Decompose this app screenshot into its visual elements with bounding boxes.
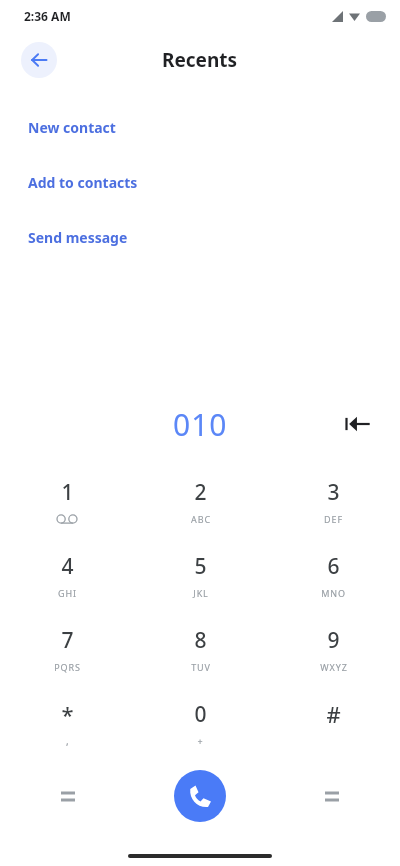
button[interactable]: Back bbox=[21, 42, 57, 78]
staticText: # bbox=[326, 699, 341, 729]
staticText: TUV bbox=[191, 661, 211, 673]
staticText: DEF bbox=[324, 513, 343, 525]
staticText: 7 bbox=[61, 626, 74, 655]
staticText: * bbox=[61, 699, 74, 729]
button[interactable]: Key * bbox=[0, 686, 134, 760]
button[interactable]: Key 0 bbox=[134, 686, 267, 760]
button[interactable]: New contact bbox=[0, 100, 400, 155]
staticText: WXYZ bbox=[320, 661, 348, 673]
button[interactable]: Key 3 bbox=[267, 464, 400, 538]
button[interactable]: Send message bbox=[0, 210, 400, 265]
staticText: PQRS bbox=[54, 661, 81, 673]
staticText: MNO bbox=[321, 587, 346, 599]
button[interactable]: Key 9 bbox=[267, 612, 400, 686]
button[interactable]: Key 6 bbox=[267, 538, 400, 612]
button[interactable]: Add to contacts bbox=[0, 155, 400, 210]
button[interactable]: Backspace bbox=[338, 404, 378, 444]
staticText: 8 bbox=[194, 626, 207, 655]
staticText: 6 bbox=[327, 552, 340, 581]
staticText: 3 bbox=[327, 478, 340, 507]
staticText: 2 bbox=[194, 478, 207, 507]
staticText: ABC bbox=[191, 513, 211, 525]
staticText: JKL bbox=[193, 587, 209, 599]
staticText: 4 bbox=[61, 552, 74, 581]
button[interactable]: Key 2 bbox=[134, 464, 267, 538]
staticText: New contact bbox=[28, 118, 116, 137]
staticText: Send message bbox=[28, 228, 128, 247]
staticText: Recents bbox=[162, 47, 238, 73]
staticText: + bbox=[197, 735, 204, 747]
staticText: 0 bbox=[194, 700, 207, 729]
button[interactable]: Dialpad options bbox=[48, 776, 88, 816]
button[interactable]: Key 8 bbox=[134, 612, 267, 686]
button[interactable]: Key # bbox=[267, 686, 400, 760]
button[interactable]: Key 1 bbox=[0, 464, 134, 538]
staticText: GHI bbox=[58, 587, 77, 599]
button[interactable]: Key 5 bbox=[134, 538, 267, 612]
button[interactable]: Key 4 bbox=[0, 538, 134, 612]
button[interactable]: Key 7 bbox=[0, 612, 134, 686]
staticText: 010 bbox=[173, 404, 228, 445]
button[interactable]: More options bbox=[312, 776, 352, 816]
staticText: 2:36 AM bbox=[24, 8, 71, 24]
staticText: , bbox=[66, 734, 69, 747]
staticText: 1 bbox=[61, 478, 74, 507]
button[interactable]: Call bbox=[174, 770, 226, 822]
staticText: 9 bbox=[327, 626, 340, 655]
staticText: Add to contacts bbox=[28, 173, 138, 192]
staticText: 5 bbox=[194, 552, 207, 581]
